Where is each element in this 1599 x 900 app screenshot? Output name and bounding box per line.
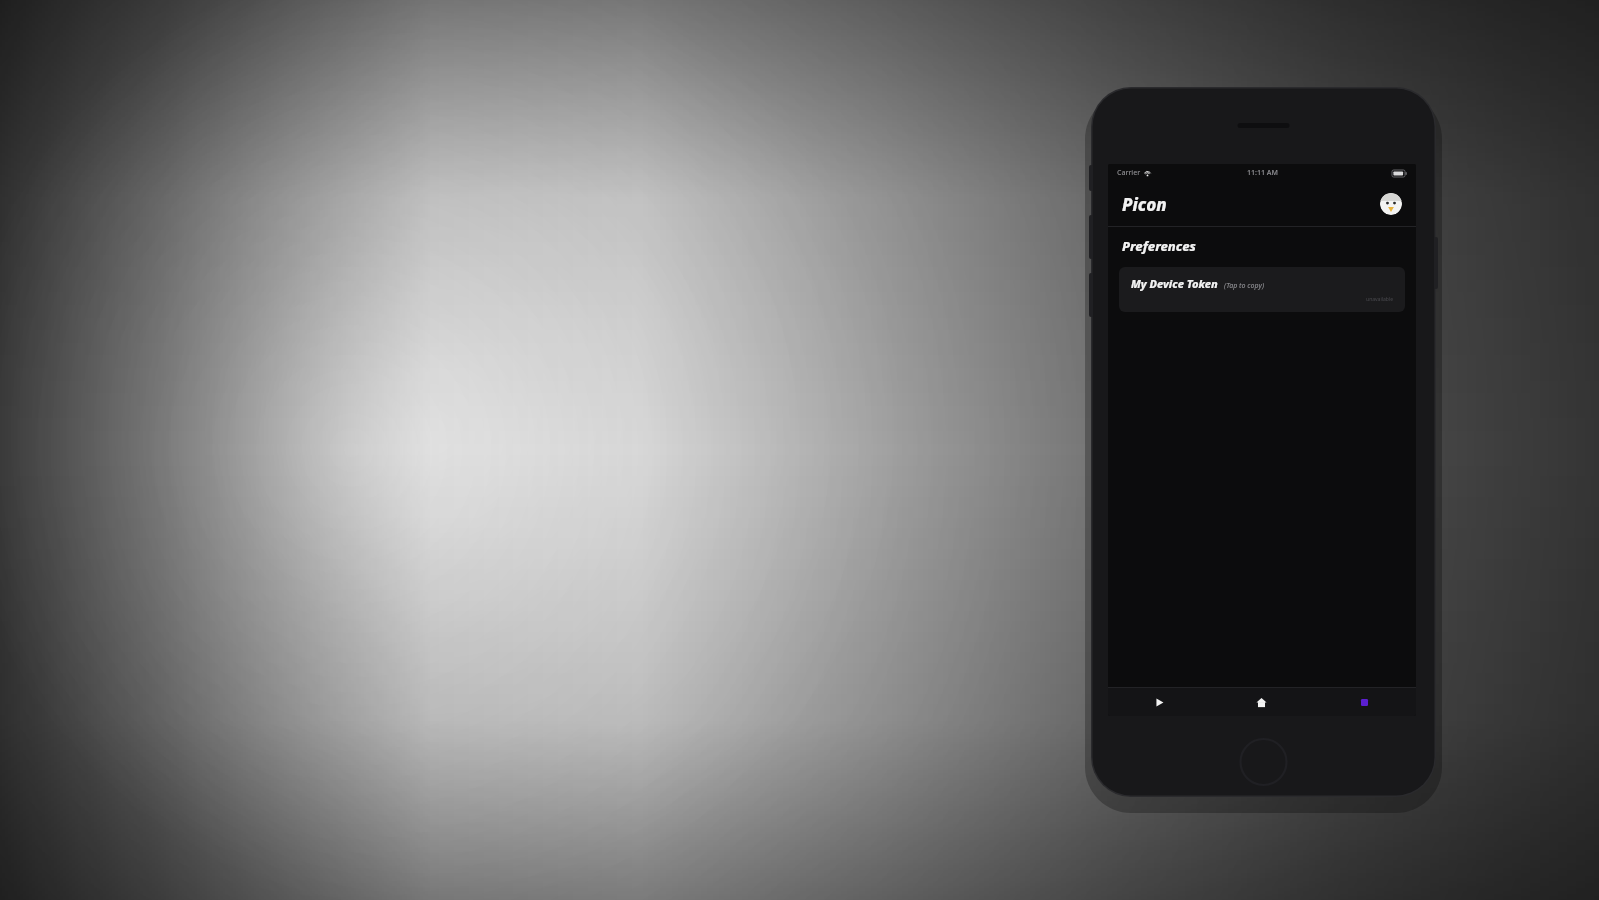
staticText: My Device Token (1131, 276, 1218, 291)
staticText: Picon (1122, 193, 1167, 216)
staticText: unavailable (1131, 296, 1393, 303)
button[interactable]: Feed (1108, 688, 1210, 716)
button[interactable]: Home (1210, 688, 1313, 716)
staticText: Preferences (1122, 237, 1196, 255)
staticText: 11:11 AM (1247, 168, 1278, 178)
button[interactable]: Profile (1380, 193, 1402, 215)
staticText: Carrier (1117, 168, 1141, 178)
staticText: (Tap to copy) (1224, 281, 1265, 291)
button[interactable]: Settings (1313, 688, 1416, 716)
button[interactable]: My Device Token (1119, 267, 1405, 312)
